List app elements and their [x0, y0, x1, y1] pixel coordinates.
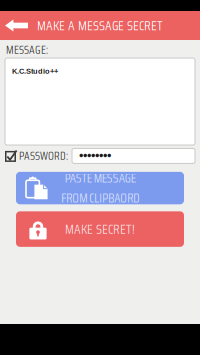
staticText: K.C.Studio++ — [12, 67, 58, 75]
button[interactable]: MAKE SECRET! — [16, 211, 184, 247]
button[interactable]: PASTE MESSAGE FROM CLIPBAORD — [16, 172, 184, 204]
button[interactable]: Use password — [5, 150, 17, 162]
staticText: PASSWORD: — [19, 147, 68, 165]
staticText: PASTE MESSAGE FROM CLIPBAORD — [61, 168, 139, 208]
staticText: •••••••• — [79, 149, 111, 163]
staticText: MESSAGE: — [6, 41, 48, 59]
button[interactable]: Back — [0, 11, 34, 39]
staticText: MAKE A MESSAGE SECRET — [37, 15, 163, 36]
staticText: MAKE SECRET! — [65, 219, 135, 240]
